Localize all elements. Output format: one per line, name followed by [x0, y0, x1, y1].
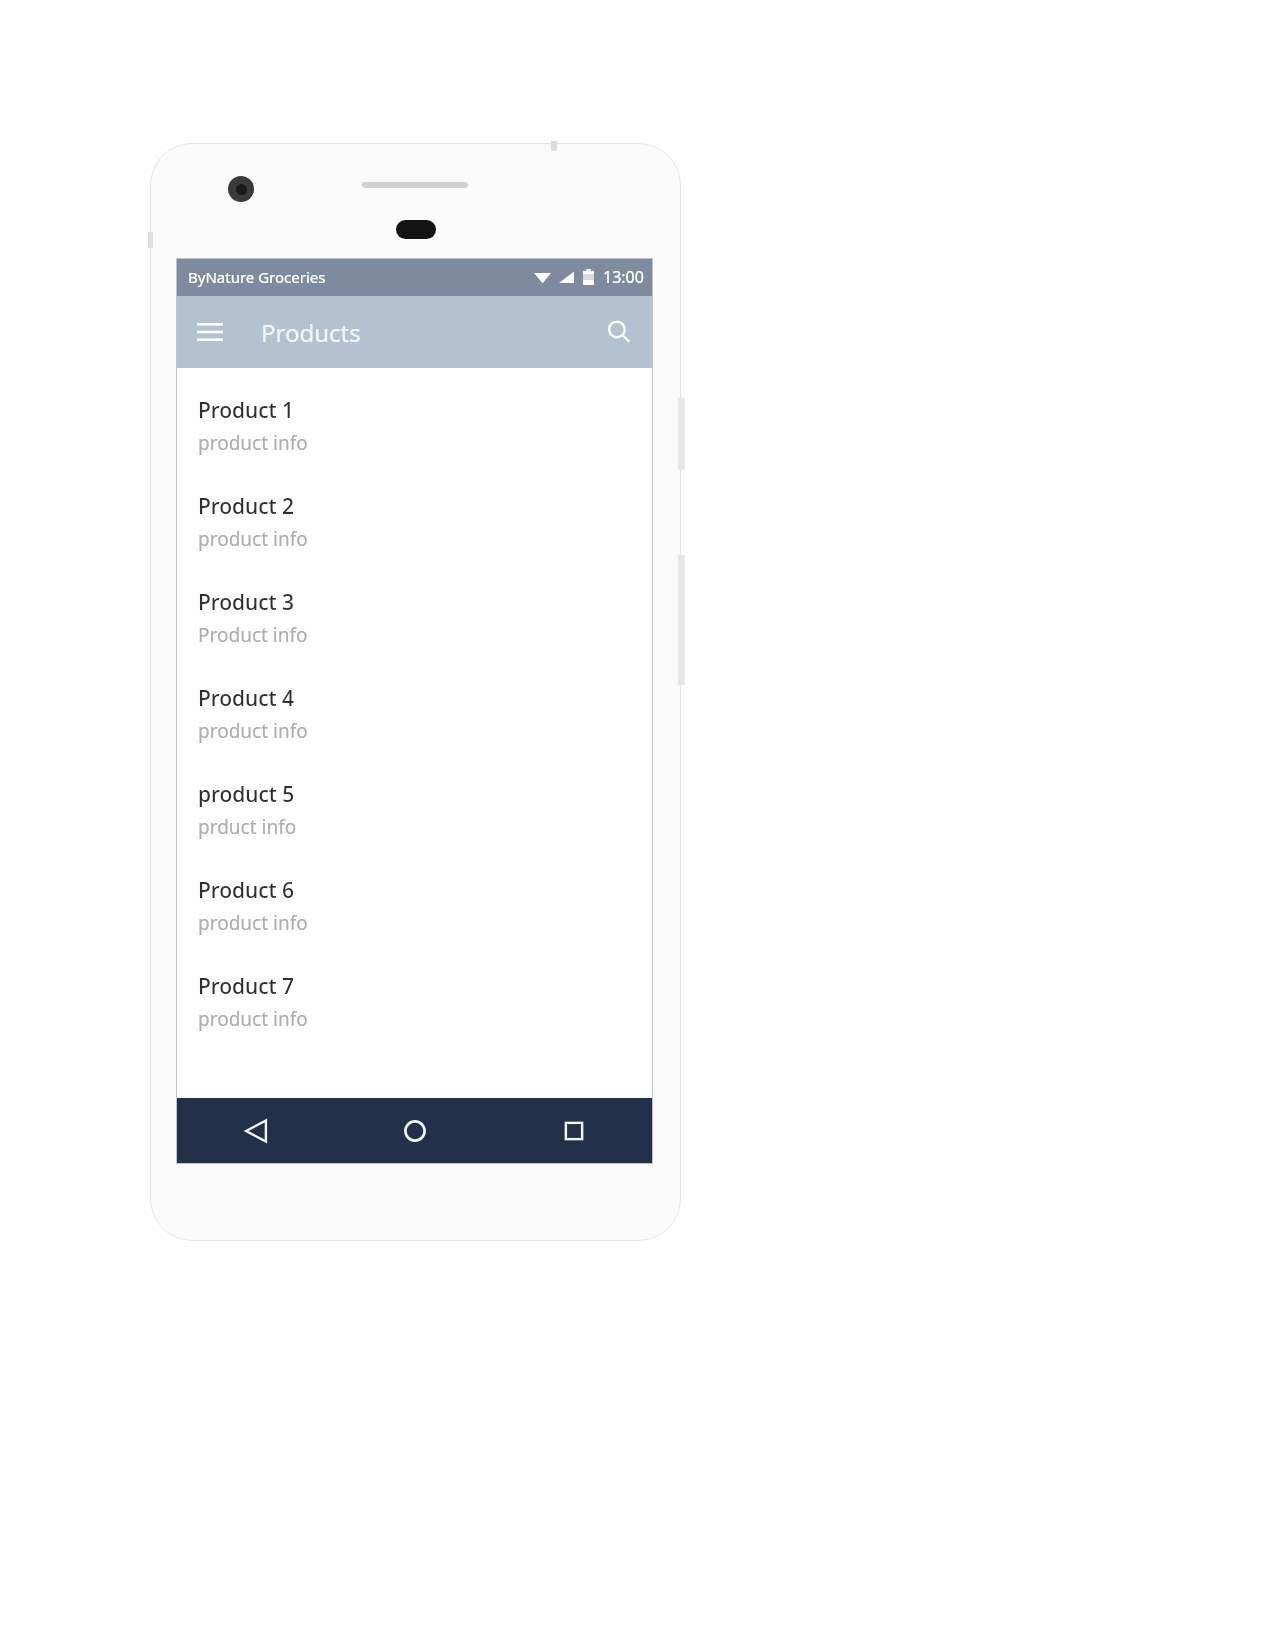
staticText: product info — [198, 1006, 308, 1032]
staticText: prduct info — [198, 814, 297, 840]
staticText: Product 3 — [198, 588, 295, 617]
button[interactable]: Back — [176, 1098, 335, 1164]
staticText: product info — [198, 718, 308, 744]
button[interactable]: Product 4 — [176, 676, 653, 772]
button[interactable]: Product 7 — [176, 964, 653, 1060]
button[interactable]: Product 3 — [176, 580, 653, 676]
staticText: Product info — [198, 622, 308, 648]
staticText: product info — [198, 910, 308, 936]
staticText: Product 4 — [198, 684, 295, 713]
button[interactable]: product 5 — [176, 772, 653, 868]
button[interactable]: Product 1 — [176, 388, 653, 484]
staticText: Product 1 — [198, 396, 295, 425]
button[interactable]: Search — [595, 308, 643, 356]
staticText: Product 6 — [198, 876, 295, 905]
button[interactable]: Product 6 — [176, 868, 653, 964]
staticText: ByNature Groceries — [188, 267, 326, 287]
staticText: product 5 — [198, 780, 295, 809]
staticText: Products — [261, 316, 361, 349]
staticText: product info — [198, 430, 308, 456]
button[interactable]: Home — [335, 1098, 494, 1164]
staticText: Product 7 — [198, 972, 295, 1001]
button[interactable]: Open navigation menu — [186, 308, 234, 356]
staticText: Product 2 — [198, 492, 295, 521]
staticText: product info — [198, 526, 308, 552]
button[interactable]: Recent apps — [494, 1098, 653, 1164]
button[interactable]: Product 2 — [176, 484, 653, 580]
staticText: 13:00 — [603, 266, 644, 288]
